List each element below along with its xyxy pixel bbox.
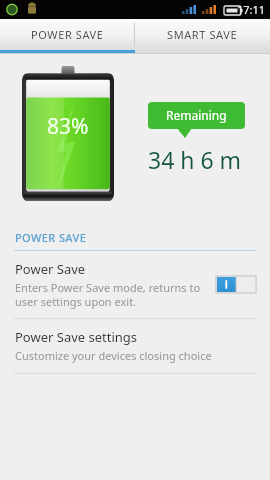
staticText: Power Save (15, 260, 86, 278)
staticText: Power Save settings (15, 328, 138, 346)
button[interactable]: POWER SAVE (0, 19, 134, 50)
staticText: SMART SAVE (167, 27, 238, 42)
staticText: POWER SAVE (31, 27, 104, 42)
button[interactable]: SMART SAVE (135, 19, 270, 50)
button[interactable]: Power Save settings (0, 319, 270, 373)
button[interactable]: Power Save toggle (216, 276, 256, 293)
staticText: 17:11 (237, 2, 266, 17)
staticText: Remaining (166, 107, 227, 123)
staticText: 83% (47, 112, 89, 141)
button[interactable]: Power Save (0, 251, 270, 318)
staticText: 34 h 6 m (148, 144, 242, 175)
staticText: POWER SAVE (15, 230, 87, 245)
staticText: Customize your devices closing choice (15, 348, 212, 363)
staticText: Enters Power Save mode, returns to user … (15, 280, 201, 309)
